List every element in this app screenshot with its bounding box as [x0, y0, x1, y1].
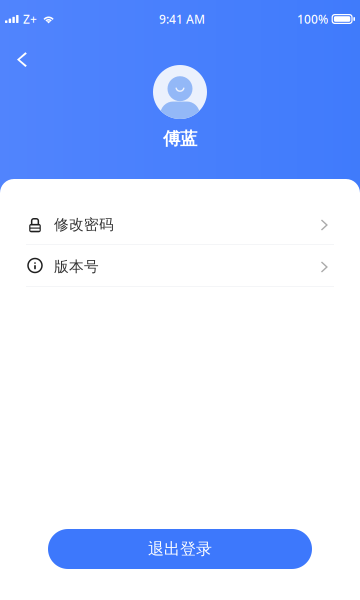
- staticText: 版本号: [54, 257, 99, 275]
- staticText: 退出登录: [148, 539, 212, 559]
- staticText: 修改密码: [54, 215, 114, 233]
- button[interactable]: Back: [0, 43, 41, 76]
- staticText: 9:41 AM: [159, 11, 205, 27]
- staticText: 100%: [297, 11, 328, 27]
- button[interactable]: 退出登录: [48, 529, 312, 569]
- staticText: 傅蓝: [163, 128, 197, 149]
- staticText: Z+: [23, 11, 37, 27]
- button[interactable]: 修改密码: [0, 203, 360, 244]
- button[interactable]: 版本号: [0, 245, 360, 286]
